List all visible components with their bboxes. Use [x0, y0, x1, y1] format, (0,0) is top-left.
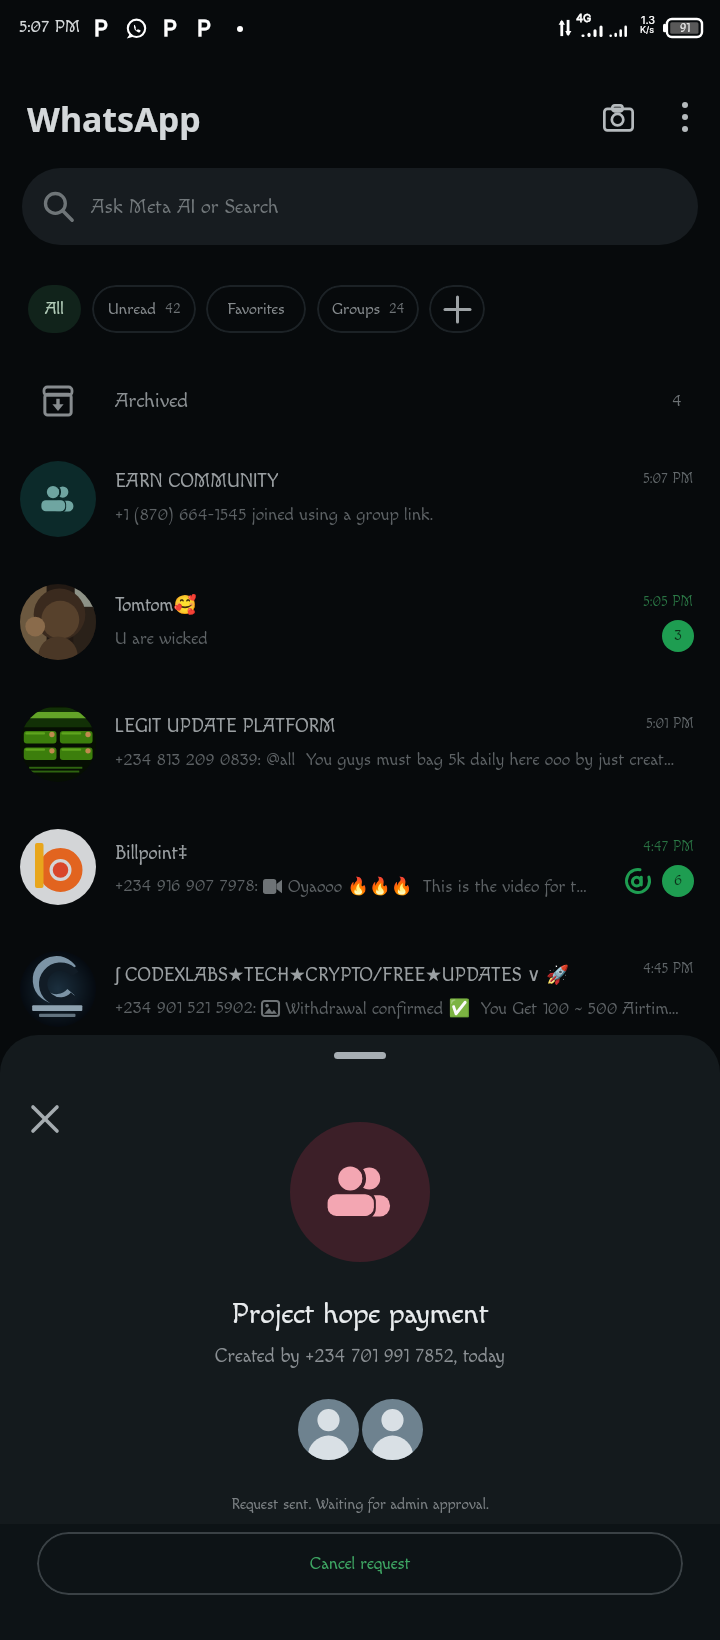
staticText: 1.3: [641, 13, 656, 26]
button[interactable]: Add filter: [429, 285, 485, 333]
staticText: 4:45 PM: [643, 961, 694, 978]
button[interactable]: Groups: [317, 285, 419, 333]
staticText: +234 901 521 5902:: [115, 998, 257, 1019]
staticText: ʃ CODEXLABS★TECH★CRYPTO/FREE★UPDATES ∨ 🚀: [115, 961, 570, 986]
staticText: Ask Meta AI or Search: [91, 195, 279, 219]
staticText: Created by +234 701 991 7852, today: [215, 1345, 505, 1367]
staticText: 6: [674, 872, 683, 890]
staticText: Project hope payment: [231, 1297, 489, 1331]
staticText: 4: [672, 391, 682, 411]
staticText: Tomtom🥰: [115, 594, 197, 617]
staticText: LEGIT UPDATE PLATFORM: [115, 716, 336, 738]
button[interactable]: Unread: [92, 285, 196, 333]
staticText: +1 (870) 664-1545 joined using a group l…: [115, 505, 434, 526]
staticText: Favorites: [227, 300, 285, 319]
staticText: EARN COMMUNITY: [115, 471, 279, 493]
staticText: 4:47 PM: [643, 839, 694, 856]
staticText: Archived: [115, 389, 189, 413]
staticText: K/s: [640, 24, 655, 35]
staticText: 4G: [576, 11, 592, 24]
staticText: Withdrawal confirmed ✅ You Get 100 ~ 500…: [285, 998, 679, 1019]
button[interactable]: Cancel request: [37, 1532, 683, 1595]
button[interactable]: WhatsApp: [20, 86, 208, 152]
staticText: 5:07 PM: [643, 471, 694, 488]
staticText: 42: [165, 301, 181, 318]
staticText: 24: [389, 301, 405, 318]
staticText: All: [45, 299, 64, 319]
staticText: Unread: [108, 300, 157, 319]
button[interactable]: ʃ CODEXLABS★TECH★CRYPTO/FREE★UPDATES ∨ 🚀: [0, 928, 720, 1050]
button[interactable]: Ask Meta AI or Search: [22, 168, 698, 245]
button[interactable]: More options: [655, 87, 715, 147]
staticText: 5:07 PM: [19, 17, 81, 37]
staticText: Oyaooo 🔥🔥🔥 This is the video for t…: [288, 876, 587, 897]
button[interactable]: Favorites: [206, 285, 306, 333]
button[interactable]: Camera: [588, 87, 648, 147]
button[interactable]: LEGIT UPDATE PLATFORM: [0, 683, 720, 805]
button[interactable]: Close: [14, 1088, 76, 1150]
staticText: WhatsApp: [27, 96, 201, 142]
staticText: P: [163, 15, 178, 42]
staticText: 3: [674, 627, 682, 645]
staticText: Groups: [332, 300, 381, 319]
staticText: 91: [680, 21, 690, 35]
staticText: Billpoint‡: [115, 839, 188, 864]
button[interactable]: EARN COMMUNITY: [0, 438, 720, 560]
staticText: Cancel request: [310, 1554, 411, 1574]
button[interactable]: Billpoint‡: [0, 806, 720, 928]
staticText: +234 813 209 0839: @all You guys must ba…: [115, 750, 675, 771]
staticText: +234 916 907 7978:: [115, 876, 258, 897]
staticText: P: [197, 15, 212, 42]
staticText: U are wicked: [115, 629, 208, 650]
button[interactable]: Tomtom🥰: [0, 561, 720, 683]
staticText: 5:01 PM: [646, 716, 694, 733]
button[interactable]: All: [28, 285, 81, 333]
staticText: 5:05 PM: [643, 594, 694, 611]
staticText: Request sent. Waiting for admin approval…: [231, 1496, 489, 1514]
button[interactable]: Archived: [0, 362, 720, 440]
staticText: P: [94, 15, 109, 42]
